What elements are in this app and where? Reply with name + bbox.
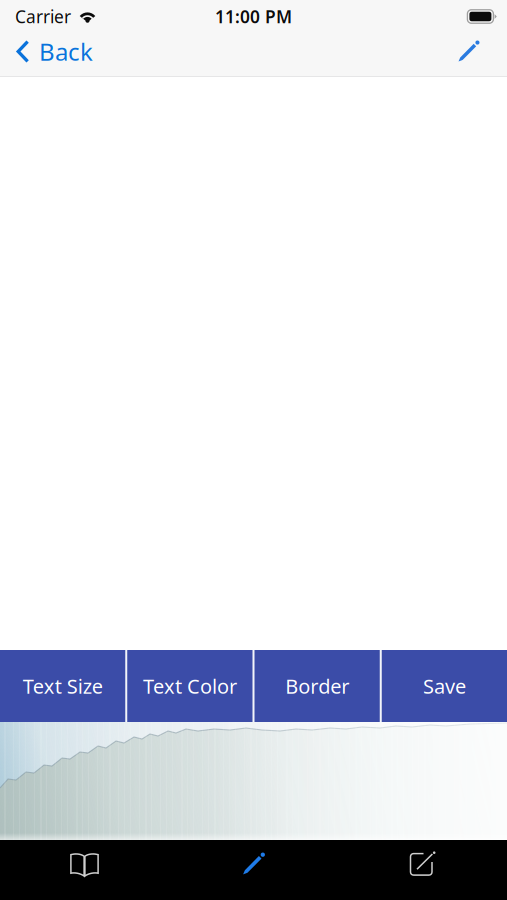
staticText: Text Color <box>143 673 237 699</box>
button[interactable]: Back <box>0 29 107 73</box>
button[interactable]: Draw <box>169 840 338 900</box>
button[interactable]: Library <box>0 840 169 900</box>
button[interactable]: Text Color <box>127 650 252 722</box>
staticText: Border <box>285 673 349 699</box>
button[interactable]: Save <box>382 650 507 722</box>
button[interactable]: Compose <box>338 840 507 900</box>
staticText: Save <box>423 673 466 699</box>
staticText: Text Size <box>23 673 103 699</box>
button[interactable]: Border <box>254 650 380 722</box>
button[interactable]: Edit <box>438 29 507 73</box>
staticText: 11:00 PM <box>215 5 292 28</box>
staticText: Carrier <box>15 5 71 28</box>
staticText: Back <box>39 36 93 67</box>
button[interactable]: Text Size <box>0 650 125 722</box>
